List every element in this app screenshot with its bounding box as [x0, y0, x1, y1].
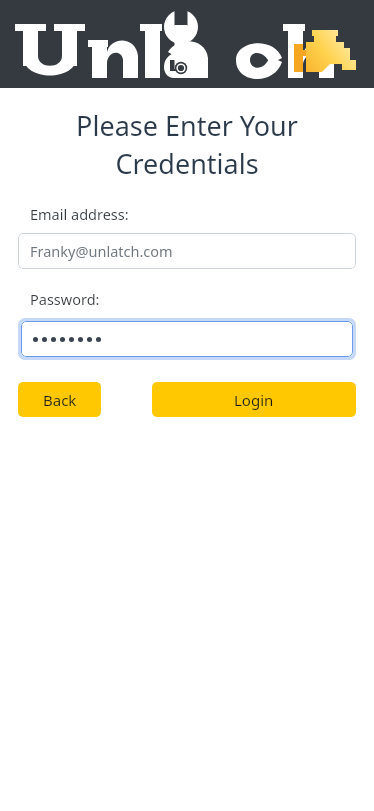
staticText: Franky@unlatch.com	[30, 241, 173, 261]
staticText: Email address:	[30, 204, 129, 224]
staticText: Login	[234, 390, 274, 410]
other: Unlatch logo	[0, 0, 374, 88]
staticText: Password:	[30, 289, 100, 309]
staticText: Back	[43, 390, 77, 410]
staticText: Please Enter Your Credentials	[24, 107, 350, 182]
button[interactable]	[21, 321, 353, 357]
button[interactable]: Back	[18, 382, 101, 417]
button[interactable]: Franky@unlatch.com	[18, 233, 356, 269]
button[interactable]: Login	[152, 382, 356, 417]
